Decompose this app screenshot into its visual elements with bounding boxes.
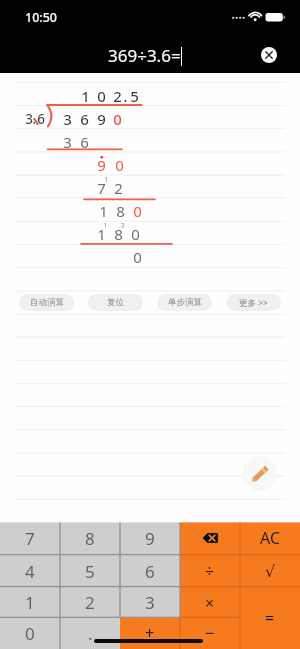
staticText: 1 [25,591,35,614]
button[interactable]: ÷ [180,555,240,587]
button[interactable]: √ [240,555,300,587]
staticText: 7 [97,178,106,198]
staticText: 0 [25,622,35,645]
staticText: 8 [116,201,125,221]
button[interactable]: − [180,617,240,649]
button[interactable]: = [240,587,300,649]
staticText: 0 [133,201,142,221]
button[interactable]: 更多 >> [226,294,281,311]
staticText: 3 [145,591,155,614]
staticText: 5 [130,86,139,106]
staticText: 0 [133,247,142,267]
staticText: √ [265,562,276,581]
staticText: 0 [131,224,140,244]
staticText: . [32,110,36,128]
staticText: 6 [37,110,45,128]
staticText: 更多 >> [239,297,268,309]
button[interactable]: . [60,617,120,649]
button[interactable]: 7 [0,522,60,554]
staticText: AC [260,527,281,549]
button[interactable]: 1 [0,587,60,618]
button[interactable]: × [180,587,240,618]
staticText: . [88,622,93,645]
staticText: 2 [113,86,122,106]
staticText: 3 [25,110,33,128]
button[interactable]: + [120,617,180,649]
button[interactable]: Handwrite [242,456,277,491]
button[interactable]: 5 [60,555,120,587]
button[interactable]: 复位 [88,294,143,311]
staticText: 9 [145,527,155,550]
staticText: − [205,622,215,644]
staticText: 1 [81,86,90,106]
button[interactable]: 单步演算 [157,294,212,311]
staticText: 6 [145,560,155,583]
staticText: 6 [80,132,89,152]
button[interactable]: 8 [60,522,120,554]
staticText: 自动演算 [30,297,64,308]
staticText: 1 [99,201,108,221]
button[interactable]: 9 [120,522,180,554]
staticText: 复位 [107,297,124,308]
button[interactable]: Backspace [180,522,240,554]
button[interactable]: 6 [120,555,180,587]
button[interactable]: 0 [0,617,60,649]
staticText: 9 [97,155,106,175]
staticText: = [265,607,275,629]
staticText: 5 [85,560,95,583]
staticText: 4 [25,560,35,583]
staticText: 3 [120,221,125,231]
staticText: 1 [97,224,106,244]
button[interactable]: 自动演算 [19,294,74,311]
staticText: 8 [85,527,95,550]
staticText: × [205,592,215,614]
staticText: 3 [63,132,72,152]
staticText: 8 [114,224,123,244]
staticText: 单步演算 [168,297,202,308]
staticText: 3 [63,109,72,129]
staticText: 369÷3.6= [108,44,181,67]
button[interactable]: Clear expression [261,47,277,63]
staticText: 0 [115,155,124,175]
other: Backspace [202,533,218,543]
button[interactable]: 2 [60,587,120,618]
staticText: 1 [104,175,109,185]
staticText: ÷ [205,560,215,582]
staticText: . [123,86,128,106]
staticText: 2 [85,591,95,614]
staticText: 6 [80,109,89,129]
staticText: 1 [103,221,108,231]
staticText: 9 [97,109,106,129]
staticText: 7 [25,527,35,550]
staticText: 2 [114,178,123,198]
staticText: 0 [113,109,122,129]
button[interactable]: AC [240,522,300,554]
button[interactable]: 3 [120,587,180,618]
staticText: 0 [97,86,106,106]
button[interactable]: 4 [0,555,60,587]
staticText: 10:50 [25,9,58,26]
staticText: + [145,622,155,644]
